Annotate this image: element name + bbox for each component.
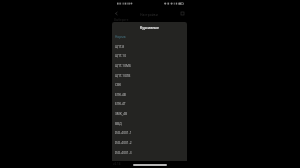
staticText: Норма	[115, 35, 126, 39]
staticText: ISO-4001-1	[115, 131, 132, 135]
staticText: ISO-4001-3	[115, 151, 132, 155]
staticText: ЗМК_4В	[115, 112, 128, 116]
staticText: ВВД	[115, 122, 122, 126]
button[interactable]: More options	[178, 9, 187, 18]
button[interactable]: Back	[112, 9, 121, 18]
staticText: ЕЛК-4Т	[115, 102, 126, 106]
staticText: СВК	[115, 83, 122, 87]
staticText: ЦПТ-10	[115, 54, 127, 58]
button[interactable]: ВВД	[112, 119, 187, 129]
staticText: Курсивные	[140, 25, 160, 29]
button[interactable]: ISO-4001-3	[112, 148, 187, 158]
staticText: Выберите	[114, 18, 129, 22]
button[interactable]: ЦПТ-10МБ	[112, 61, 187, 71]
button[interactable]: ЦПТ-10ЛВ	[112, 71, 187, 81]
button[interactable]: ЗМК_4В	[112, 109, 187, 119]
staticText: ЦПТ-10МБ	[115, 64, 131, 68]
button[interactable]: Норма	[112, 32, 187, 42]
button[interactable]: ЦПТ-10	[112, 51, 187, 61]
staticText: ЦПТ-8	[115, 45, 125, 49]
staticText: v2.14	[113, 162, 121, 166]
button[interactable]: ЦПТ-8	[112, 42, 187, 52]
button[interactable]: ЕЛК-4В	[112, 90, 187, 100]
staticText: ЦПТ-10ЛВ	[115, 74, 131, 78]
staticText: ISO-4001-2	[115, 141, 132, 145]
button[interactable]: СВК	[112, 80, 187, 90]
button[interactable]: ISO-4001-2	[112, 138, 187, 148]
staticText: Настройки	[140, 12, 158, 17]
button[interactable]: ЕЛК-4Т	[112, 99, 187, 109]
staticText: ЕЛК-4В	[115, 93, 126, 97]
button[interactable]: ISO-4001-1	[112, 128, 187, 138]
